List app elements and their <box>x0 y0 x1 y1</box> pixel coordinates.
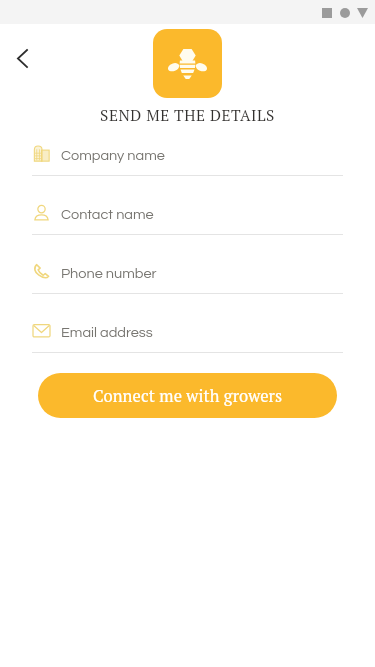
button[interactable]: Contact name <box>0 199 375 258</box>
button[interactable]: Company name <box>0 140 375 199</box>
button[interactable]: Back <box>0 36 44 80</box>
staticText: Phone number <box>61 266 157 281</box>
button[interactable]: Phone number <box>0 258 375 317</box>
staticText: Company name <box>61 148 165 163</box>
staticText: Email address <box>61 325 153 340</box>
staticText: Connect me with growers <box>93 385 283 407</box>
button[interactable]: Email address <box>0 317 375 376</box>
staticText: SEND ME THE DETAILS <box>0 105 375 126</box>
staticText: Contact name <box>61 207 154 222</box>
button[interactable]: Connect me with growers <box>38 373 337 418</box>
